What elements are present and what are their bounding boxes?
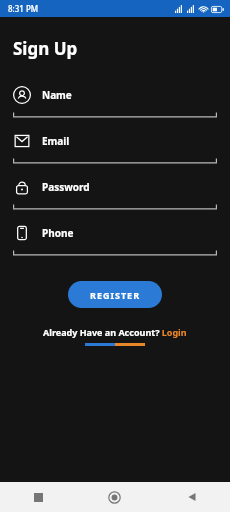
staticText: Password [42, 180, 90, 194]
staticText: Email [42, 134, 70, 148]
staticText: Phone [42, 226, 74, 240]
button[interactable]: Email [13, 132, 217, 150]
button[interactable]: Phone [13, 224, 217, 242]
button[interactable]: REGISTER [68, 281, 162, 308]
button[interactable]: Recent apps [0, 482, 76, 512]
staticText: Name [42, 88, 72, 102]
staticText: 8:31 PM [8, 3, 39, 14]
staticText: REGISTER [90, 289, 141, 301]
button[interactable]: Back [153, 482, 230, 512]
button[interactable]: Home [76, 482, 153, 512]
staticText: Sign Up [13, 37, 78, 60]
button[interactable]: Already Have an Account? Login [43, 326, 187, 338]
button[interactable]: Name [13, 86, 217, 104]
staticText: Already Have an Account? Login [43, 326, 187, 338]
button[interactable]: Password [13, 178, 217, 196]
